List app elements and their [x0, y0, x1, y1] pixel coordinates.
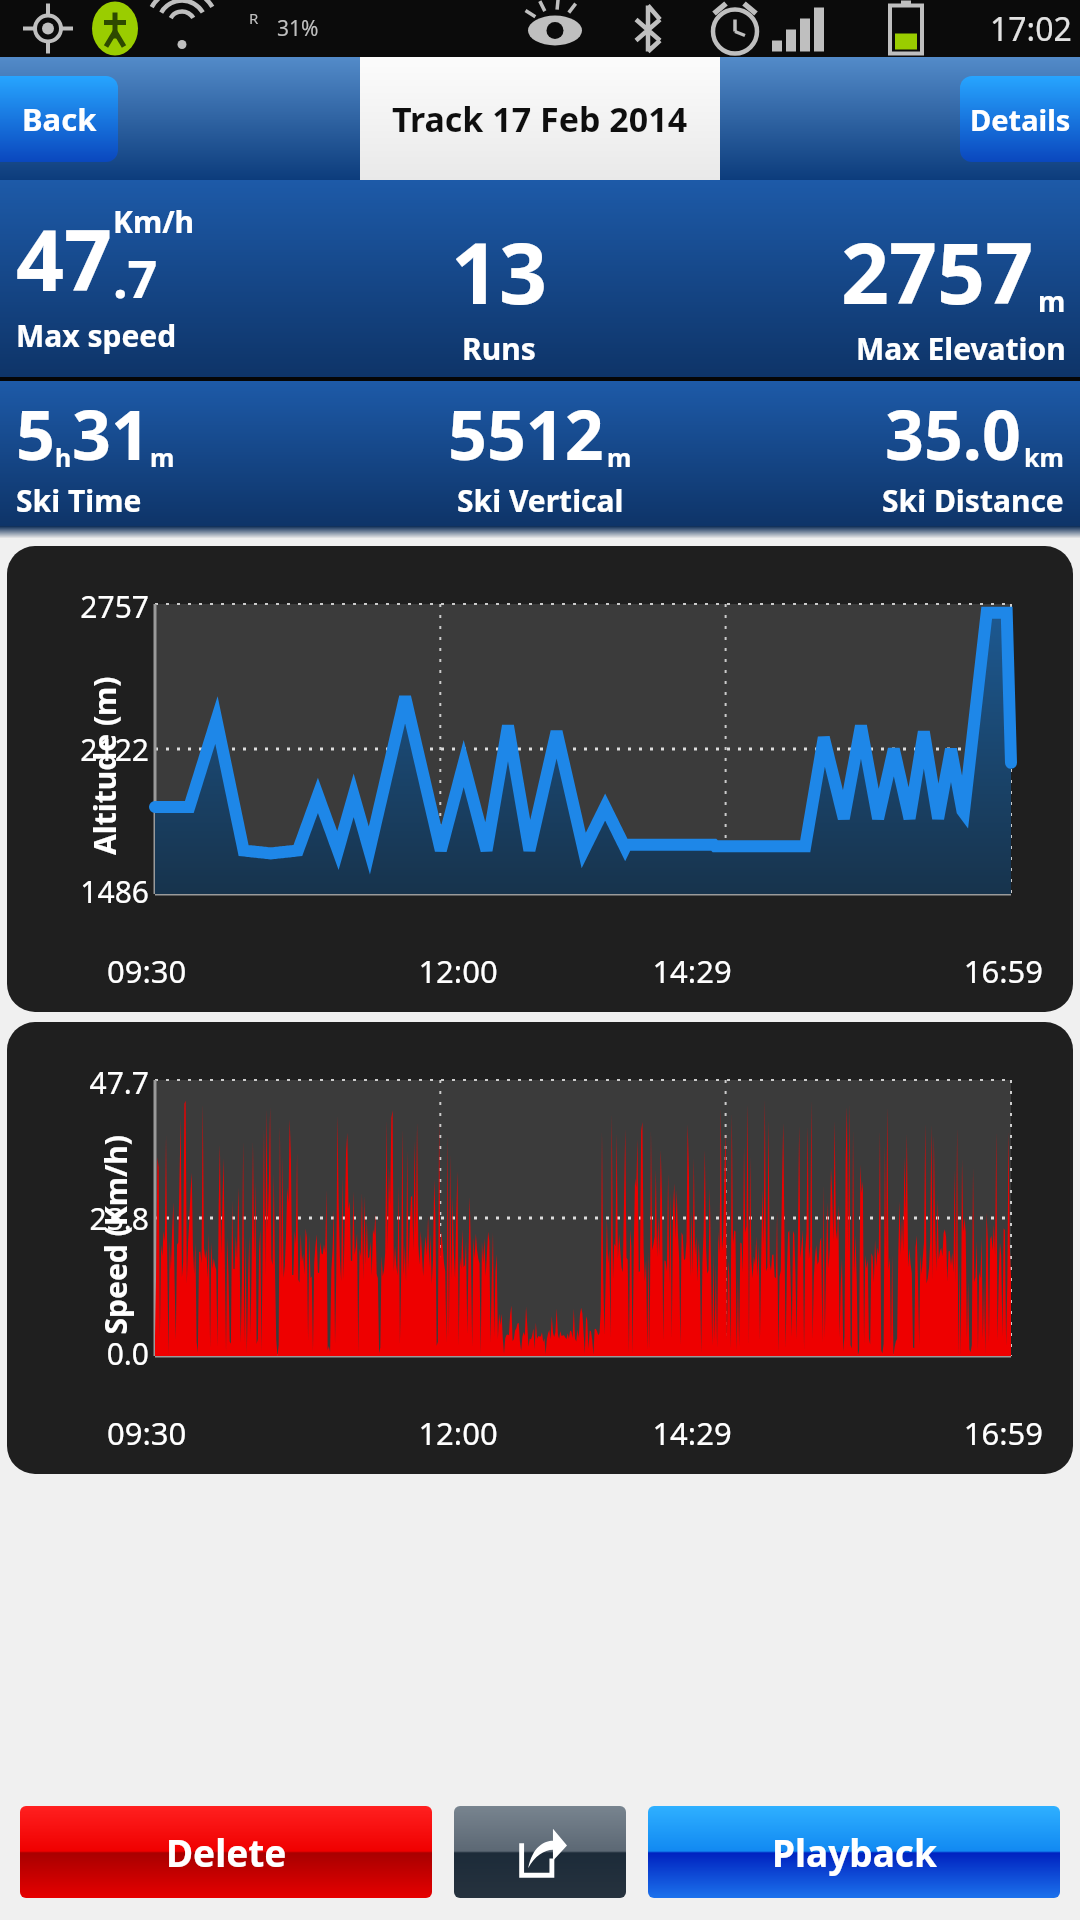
staticText: Track 17 Feb 2014 — [392, 96, 688, 142]
staticText: 47 — [16, 201, 113, 315]
button[interactable]: Back — [0, 76, 118, 162]
staticText: 13 — [451, 214, 548, 328]
staticText: 09:30 — [107, 950, 341, 992]
staticText: Max Elevation — [856, 328, 1066, 369]
staticText: 16:59 — [809, 1412, 1043, 1454]
staticText: Km/h — [113, 201, 195, 242]
staticText: 16:59 — [809, 950, 1043, 992]
button[interactable]: Share — [454, 1806, 626, 1898]
staticText: 14:29 — [575, 950, 809, 992]
staticText: R — [249, 8, 259, 28]
button[interactable]: Playback — [648, 1806, 1060, 1898]
staticText: 31% — [277, 14, 319, 43]
staticText: Delete — [166, 1827, 287, 1877]
staticText: km — [1024, 440, 1064, 474]
staticText: Runs — [462, 328, 536, 369]
staticText: 2122 — [51, 729, 149, 770]
staticText: .7 — [113, 242, 158, 313]
staticText: 12:00 — [341, 1412, 575, 1454]
staticText: h — [55, 440, 72, 474]
staticText: Playback — [772, 1827, 937, 1877]
staticText: 35.0 — [885, 387, 1021, 480]
button[interactable]: Details — [960, 76, 1080, 162]
staticText: Back — [22, 98, 97, 140]
staticText: Speed (Km/h) — [94, 1134, 135, 1334]
staticText: Ski Vertical — [457, 480, 624, 521]
staticText: 47.7 — [51, 1062, 149, 1103]
staticText: 1486 — [51, 871, 149, 912]
staticText: 5512 — [448, 387, 604, 480]
staticText: 2757 — [51, 586, 149, 627]
staticText: 2757 — [841, 214, 1034, 328]
staticText: m — [607, 440, 632, 474]
staticText: 09:30 — [107, 1412, 341, 1454]
staticText: 14:29 — [575, 1412, 809, 1454]
staticText: m — [1038, 282, 1066, 320]
staticText: 23.8 — [51, 1198, 149, 1239]
staticText: m — [150, 440, 175, 474]
staticText: Altitude (m) — [84, 676, 125, 855]
staticText: 31 — [72, 387, 150, 480]
staticText: 5 — [16, 387, 55, 480]
staticText: 17:02 — [990, 7, 1072, 51]
staticText: Ski Time — [16, 480, 142, 521]
staticText: Ski Distance — [882, 480, 1064, 521]
staticText: 0.0 — [51, 1333, 149, 1374]
staticText: 12:00 — [341, 950, 575, 992]
staticText: Details — [970, 100, 1071, 139]
staticText: Max speed — [16, 315, 177, 356]
button[interactable]: Delete — [20, 1806, 432, 1898]
